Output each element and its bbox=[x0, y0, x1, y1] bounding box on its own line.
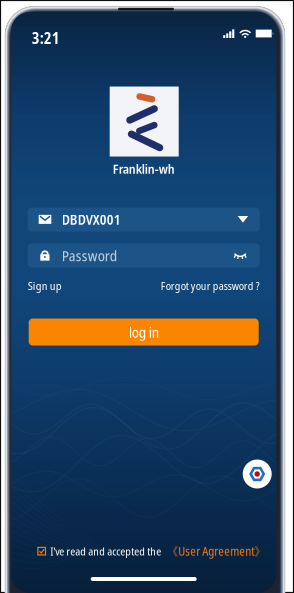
button[interactable]: Sign up bbox=[28, 278, 62, 293]
staticText: 《User Agreement》 bbox=[166, 543, 266, 559]
button[interactable]: Support bbox=[243, 459, 272, 488]
staticText: I've read and accepted the bbox=[50, 544, 161, 559]
button[interactable]: Forgot your password ? bbox=[161, 278, 260, 293]
staticText: Forgot your password ? bbox=[161, 278, 260, 293]
staticText: Password bbox=[62, 245, 117, 265]
staticText: log in bbox=[129, 322, 159, 342]
button[interactable]: Password bbox=[28, 243, 260, 267]
button[interactable]: Accept the user agreement bbox=[37, 547, 46, 556]
staticText: Sign up bbox=[28, 278, 62, 293]
staticText: DBDVX001 bbox=[62, 210, 121, 229]
button[interactable]: log in bbox=[29, 318, 259, 345]
button[interactable]: 《User Agreement》 bbox=[166, 543, 266, 559]
staticText: 3:21 bbox=[32, 27, 60, 48]
button[interactable]: DBDVX001 bbox=[28, 207, 260, 231]
staticText: Franklin-wh bbox=[113, 160, 175, 178]
